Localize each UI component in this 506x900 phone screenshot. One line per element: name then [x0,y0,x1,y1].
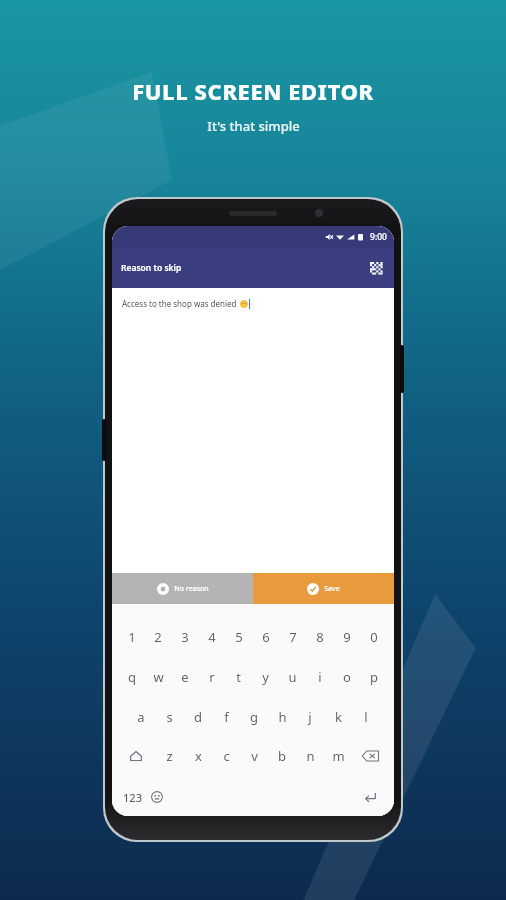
button[interactable]: Backspace [352,743,389,769]
button[interactable]: v [240,743,268,769]
button[interactable]: q [119,666,145,688]
staticText: e [181,668,189,686]
staticText: 9 [343,628,351,646]
staticText: Access to the shop was denied [122,298,237,309]
staticText: 123 [123,790,142,805]
staticText: w [153,668,164,686]
staticText: r [209,668,215,686]
button[interactable]: n [296,743,324,769]
button[interactable]: 6 [252,626,279,648]
button[interactable]: 5 [225,626,252,648]
staticText: 7 [289,628,297,646]
staticText: a [137,708,145,726]
button[interactable]: m [324,743,352,769]
staticText: t [236,668,241,686]
staticText: o [343,668,351,686]
button[interactable]: z [155,743,184,769]
button[interactable]: i [306,666,333,688]
button[interactable]: Scan QR code [366,258,386,278]
button[interactable]: 0 [360,626,387,648]
button[interactable]: k [324,706,352,728]
button[interactable]: y [252,666,279,688]
button[interactable]: Emoji [145,783,169,811]
button[interactable]: 9 [333,626,360,648]
staticText: s [166,708,173,726]
staticText: z [166,747,173,765]
button[interactable]: r [198,666,225,688]
staticText: j [308,708,312,726]
button[interactable]: h [268,706,296,728]
staticText: Reason to skip [121,262,182,274]
button[interactable]: 7 [279,626,306,648]
staticText: 9:00 [370,231,387,243]
staticText: b [278,747,286,765]
button[interactable]: e [171,666,198,688]
staticText: f [224,708,229,726]
staticText: k [335,708,342,726]
button[interactable]: 4 [198,626,225,648]
button[interactable]: a [126,706,155,728]
button[interactable]: x [184,743,212,769]
staticText: 0 [370,628,378,646]
staticText: It's that simple [207,117,300,135]
staticText: d [194,708,202,726]
button[interactable]: j [296,706,324,728]
button[interactable]: l [352,706,380,728]
staticText: x [195,747,202,765]
staticText: p [370,668,378,686]
button[interactable]: g [240,706,268,728]
button[interactable]: 2 [145,626,171,648]
button[interactable]: s [155,706,184,728]
button[interactable]: d [184,706,212,728]
staticText: y [262,668,269,686]
staticText: Save [324,584,340,594]
staticText: 5 [235,628,243,646]
button[interactable]: u [279,666,306,688]
staticText: i [318,668,322,686]
button[interactable]: 123 [119,783,145,811]
staticText: u [288,668,297,686]
staticText: 6 [262,628,270,646]
button[interactable]: Enter [353,783,387,811]
button[interactable]: f [212,706,240,728]
staticText: No reason [174,584,209,594]
staticText: c [223,747,230,765]
staticText: l [364,708,368,726]
button[interactable]: Save [253,573,394,604]
button[interactable]: 8 [306,626,333,648]
staticText: v [251,747,258,765]
staticText: 8 [316,628,324,646]
button[interactable]: 1 [119,626,145,648]
staticText: 1 [128,628,136,646]
staticText: n [306,747,315,765]
staticText: g [250,708,258,726]
staticText: q [128,668,136,686]
button[interactable]: c [212,743,240,769]
staticText: FULL SCREEN EDITOR [132,76,374,106]
button[interactable]: t [225,666,252,688]
button[interactable]: p [360,666,387,688]
button[interactable]: o [333,666,360,688]
staticText: 3 [181,628,189,646]
staticText: 2 [154,628,162,646]
staticText: m [332,747,345,765]
button[interactable]: No reason [112,573,253,604]
button[interactable]: Shift [117,743,155,769]
staticText: 4 [208,628,216,646]
staticText: h [278,708,287,726]
button[interactable]: b [268,743,296,769]
button[interactable]: 3 [171,626,198,648]
button[interactable]: w [145,666,171,688]
